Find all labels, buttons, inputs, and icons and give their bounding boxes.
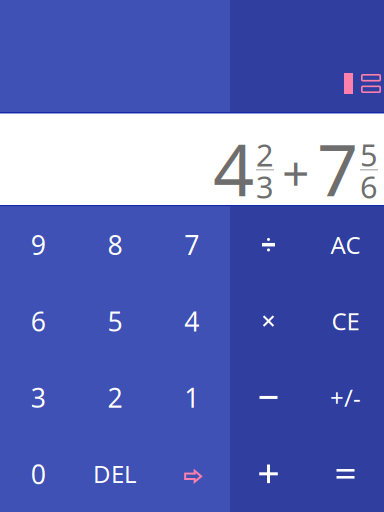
staticText: + — [282, 140, 309, 204]
button[interactable]: 8 — [77, 206, 153, 283]
staticText: 6 — [31, 303, 46, 339]
staticText: 7 — [184, 227, 199, 262]
button[interactable]: 6 — [0, 283, 77, 359]
staticText: 3 — [256, 166, 274, 207]
button[interactable]: CE — [307, 283, 384, 359]
button[interactable]: 4 — [153, 283, 230, 359]
button[interactable]: DEL — [77, 436, 153, 512]
button[interactable]: Minus — [230, 359, 307, 436]
staticText: 4 — [213, 120, 254, 216]
staticText: 5 — [107, 303, 122, 339]
staticText: DEL — [93, 458, 137, 490]
staticText: AC — [330, 229, 360, 261]
button[interactable]: 9 — [0, 206, 77, 283]
staticText: +/- — [330, 381, 361, 413]
staticText: 8 — [107, 227, 122, 262]
button[interactable]: AC — [307, 206, 384, 283]
button[interactable]: 0 — [0, 436, 77, 512]
staticText: CE — [331, 305, 359, 337]
button[interactable]: Plus — [230, 436, 307, 512]
button[interactable]: 2 — [77, 359, 153, 436]
staticText: 2 — [256, 134, 274, 175]
button[interactable]: Divide — [230, 206, 307, 283]
staticText: 3 — [31, 380, 46, 415]
button[interactable]: 3 — [0, 359, 77, 436]
staticText: 1 — [184, 380, 199, 415]
staticText: 2 — [107, 380, 122, 415]
staticText: 7 — [317, 120, 358, 216]
button[interactable]: 7 — [153, 206, 230, 283]
button[interactable]: Equals — [307, 436, 384, 512]
button[interactable]: +/- — [307, 359, 384, 436]
button[interactable]: 1 — [153, 359, 230, 436]
staticText: 6 — [360, 166, 378, 207]
staticText: 5 — [360, 134, 378, 175]
button[interactable]: 5 — [77, 283, 153, 359]
staticText: 0 — [31, 456, 46, 491]
button[interactable]: Next field — [153, 436, 230, 512]
button[interactable]: Display mode — [330, 59, 384, 112]
button[interactable]: Multiply — [230, 283, 307, 359]
staticText: 9 — [31, 227, 46, 262]
staticText: 4 — [184, 303, 199, 339]
